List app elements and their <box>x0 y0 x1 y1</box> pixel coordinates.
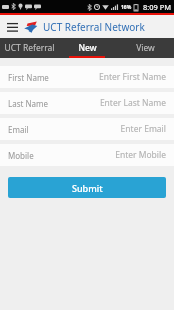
button[interactable]: Mobile <box>0 144 174 166</box>
staticText: View <box>136 42 155 54</box>
button[interactable]: View <box>116 38 174 58</box>
staticText: Enter Mobile <box>115 149 166 161</box>
staticText: Mobile <box>8 150 34 161</box>
button[interactable]: New <box>58 38 116 58</box>
button[interactable]: Last Name <box>0 92 174 114</box>
staticText: Enter Email <box>120 123 166 135</box>
staticText: New <box>78 42 97 54</box>
staticText: UCT Referral <box>4 42 55 54</box>
button[interactable]: Email <box>0 118 174 140</box>
staticText: Email <box>8 124 29 135</box>
button[interactable]: UCT Referral <box>0 38 58 58</box>
staticText: First Name <box>8 72 49 83</box>
staticText: Last Name <box>8 98 49 109</box>
staticText: Submit <box>72 182 103 194</box>
button[interactable]: Submit <box>8 177 166 198</box>
button[interactable]: Open navigation menu <box>4 19 20 35</box>
staticText: Enter First Name <box>99 71 166 83</box>
staticText: Enter Last Name <box>99 97 166 109</box>
staticText: 8:09 PM <box>143 2 172 12</box>
button[interactable]: First Name <box>0 66 174 88</box>
staticText: UCT Referral Network <box>43 20 145 34</box>
staticText: 16% <box>121 4 132 11</box>
